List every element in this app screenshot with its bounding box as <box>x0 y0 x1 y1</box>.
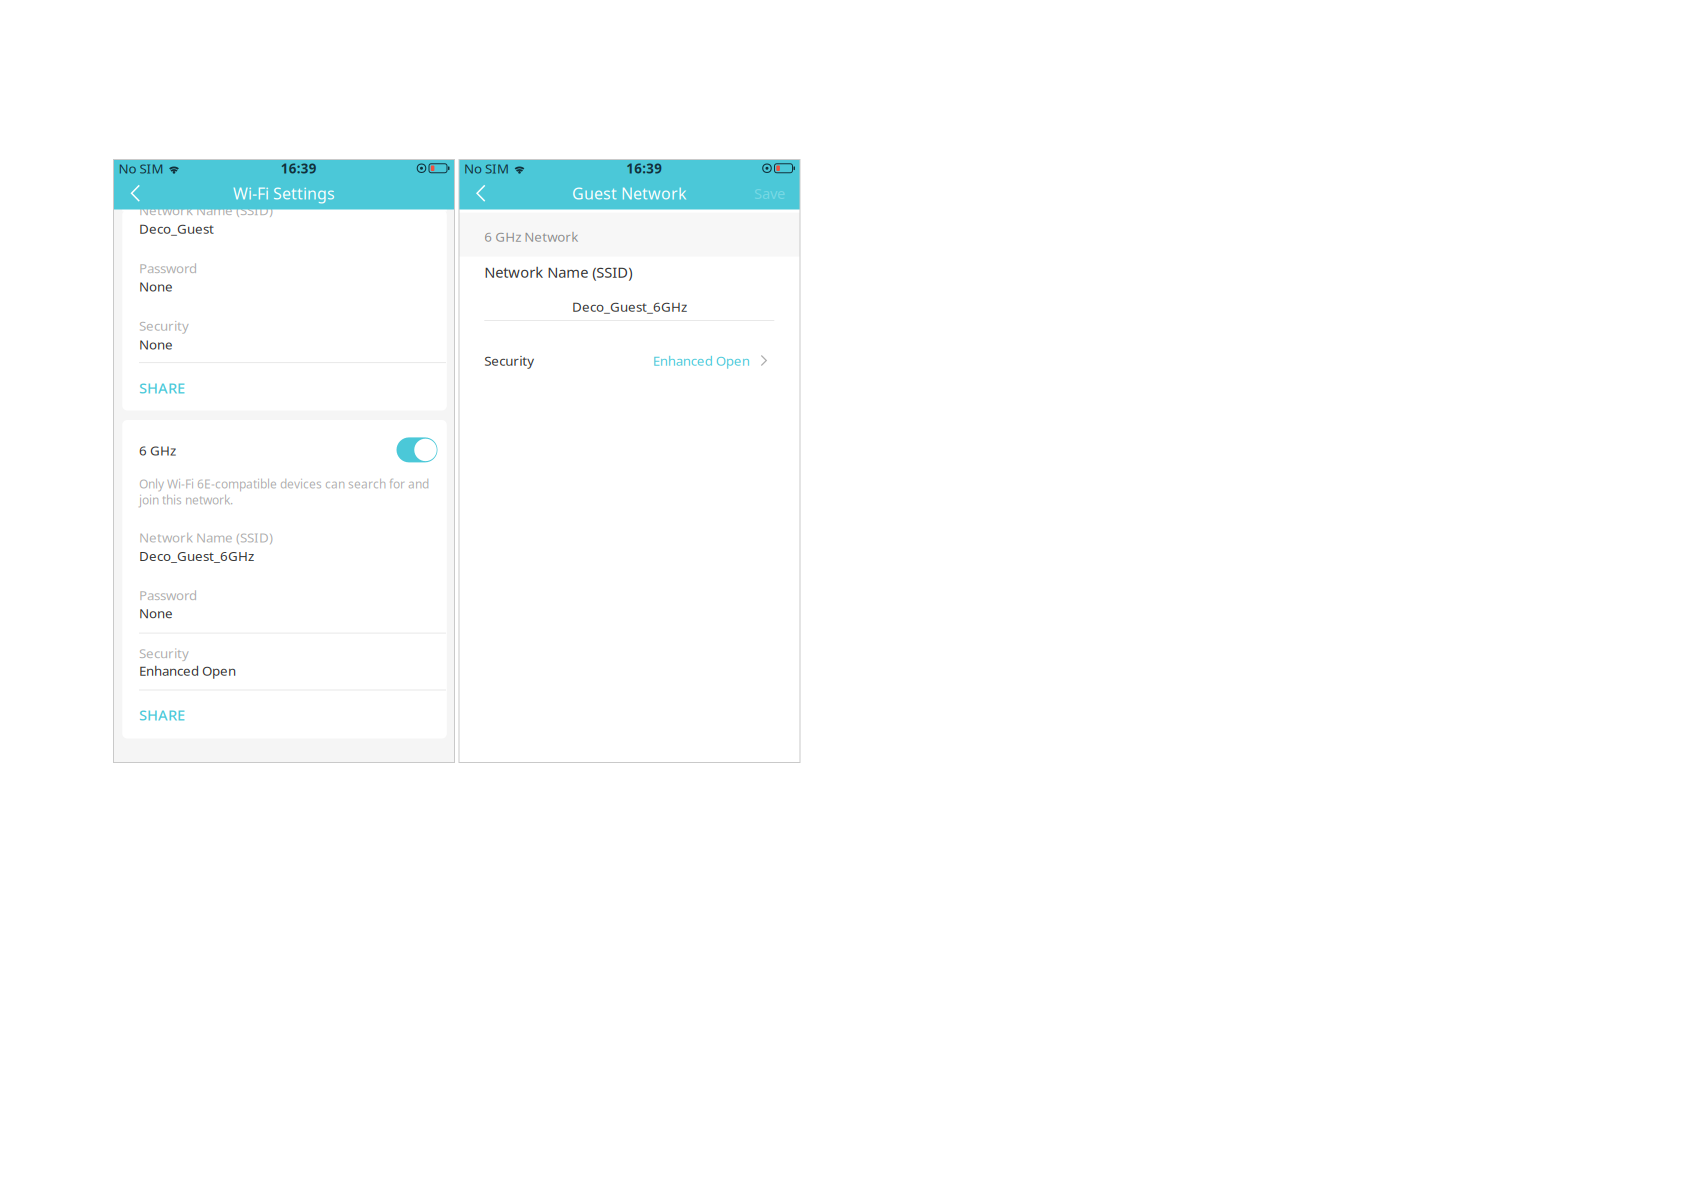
staticText: Deco_Guest_6GHz <box>139 547 254 565</box>
staticText: SHARE <box>139 705 185 724</box>
staticText: Only Wi-Fi 6E-compatible devices can sea… <box>139 476 429 508</box>
staticText: None <box>139 335 173 353</box>
staticText: Enhanced Open <box>139 662 236 679</box>
staticText: Deco_Guest <box>139 220 214 237</box>
button[interactable]: Network name <box>484 292 774 320</box>
staticText: Network Name (SSID) <box>484 262 632 282</box>
staticText: Password <box>139 586 197 604</box>
staticText: SHARE <box>139 378 185 398</box>
button[interactable]: Security <box>484 347 774 373</box>
button[interactable]: SHARE <box>139 375 446 401</box>
staticText: No SIM <box>464 159 509 177</box>
staticText: Network Name (SSID) <box>139 528 273 546</box>
staticText: Security <box>139 644 189 662</box>
staticText: Network Name (SSID) <box>139 201 273 219</box>
button[interactable]: SHARE <box>139 702 446 728</box>
staticText: None <box>139 604 173 622</box>
staticText: Security <box>484 352 534 369</box>
button[interactable]: Back <box>118 177 152 209</box>
staticText: Save <box>754 183 785 203</box>
staticText: 6 GHz <box>139 441 176 459</box>
staticText: 16:39 <box>281 159 317 177</box>
staticText: Deco_Guest_6GHz <box>572 298 687 315</box>
staticText: 6 GHz Network <box>484 228 578 245</box>
staticText: Enhanced Open <box>653 352 750 369</box>
staticText: No SIM <box>118 159 163 177</box>
staticText: None <box>139 277 173 295</box>
staticText: Security <box>139 317 189 334</box>
staticText: 16:39 <box>626 159 662 177</box>
button[interactable]: Back <box>464 177 498 209</box>
staticText: Guest Network <box>572 183 687 204</box>
staticText: Wi-Fi Settings <box>233 183 335 204</box>
button[interactable]: 6 GHz <box>396 437 437 462</box>
button[interactable]: Save <box>754 177 785 209</box>
staticText: Password <box>139 259 197 277</box>
